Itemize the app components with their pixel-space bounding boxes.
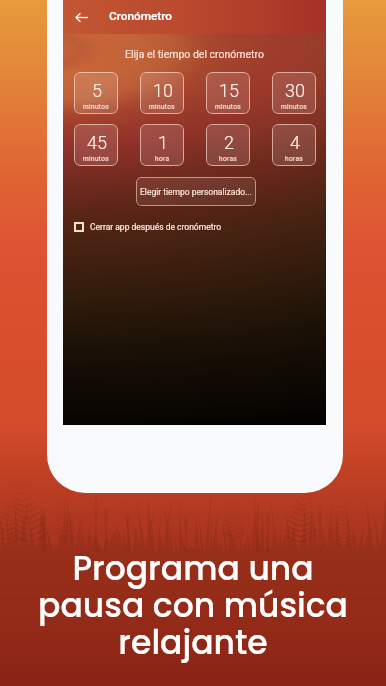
button[interactable]: 2 (206, 124, 250, 166)
button[interactable]: 45 (74, 124, 118, 166)
staticText: 10 (153, 80, 173, 101)
staticText: hora (155, 155, 170, 163)
staticText: 1 (158, 132, 168, 153)
button[interactable]: 15 (206, 72, 250, 114)
staticText: 15 (219, 80, 239, 101)
button[interactable]: 30 (272, 72, 316, 114)
staticText: horas (285, 155, 304, 163)
button[interactable]: 5 (74, 72, 118, 114)
staticText: Elija el tiempo del cronómetro (63, 48, 326, 60)
staticText: 5 (92, 80, 102, 101)
button[interactable]: Back (75, 8, 93, 26)
staticText: Elegir tiempo personalizado... (140, 187, 252, 197)
button[interactable]: Elegir tiempo personalizado... (136, 177, 256, 206)
staticText: Cronómetro (109, 9, 172, 23)
staticText: minutos (83, 103, 110, 111)
staticText: minutos (149, 103, 176, 111)
staticText: 45 (87, 132, 107, 153)
staticText: 4 (290, 132, 300, 153)
button[interactable]: Cerrar app después de cronómetro (74, 219, 222, 235)
button[interactable]: 1 (140, 124, 184, 166)
staticText: horas (219, 155, 238, 163)
button[interactable]: 4 (272, 124, 316, 166)
staticText: 2 (224, 132, 234, 153)
staticText: Cerrar app después de cronómetro (90, 222, 222, 232)
staticText: Programa una pausa con música relajante (0, 545, 386, 666)
staticText: 30 (285, 80, 305, 101)
button[interactable]: 10 (140, 72, 184, 114)
staticText: minutos (281, 103, 308, 111)
staticText: minutos (215, 103, 242, 111)
staticText: minutos (83, 155, 110, 163)
